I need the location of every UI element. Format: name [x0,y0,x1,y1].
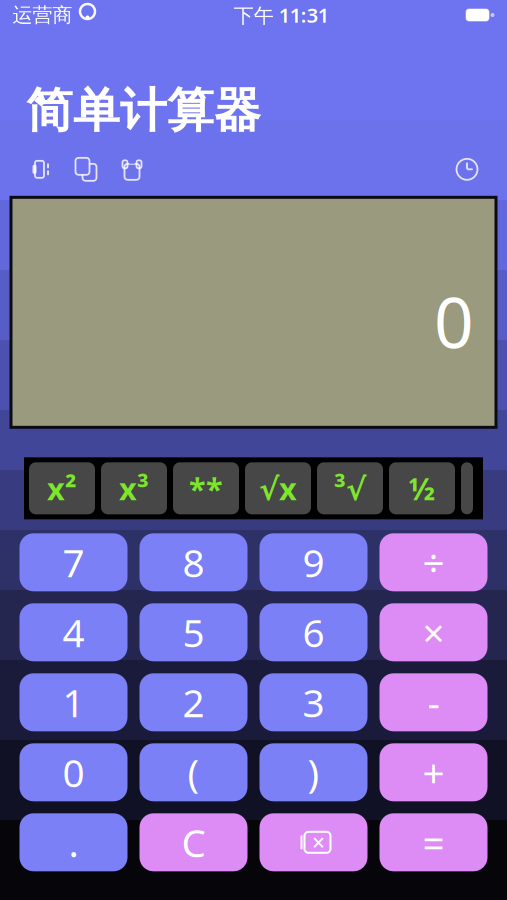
button[interactable]: 7 [19,533,127,591]
button[interactable]: 4 [19,603,127,661]
button[interactable]: = [379,813,487,871]
staticText: 运营商 [12,3,72,27]
staticText: = [422,817,444,868]
staticText: x² [47,468,77,509]
button[interactable]: 0 [19,743,127,801]
button[interactable]: 6 [259,603,367,661]
button[interactable]: × [379,603,487,661]
staticText: × [312,827,325,857]
staticText: ) [307,747,319,798]
button[interactable]: ³√ [317,462,383,514]
button[interactable]: ( [139,743,247,801]
staticText: ** [189,468,223,509]
staticText: 4 [62,607,84,658]
button[interactable]: ) [259,743,367,801]
button[interactable]: ÷ [379,533,487,591]
staticText: 8 [182,537,204,588]
staticText: × [422,607,444,658]
button[interactable]: 1 [19,673,127,731]
staticText: 3 [302,677,324,728]
button[interactable]: Theme [109,149,155,189]
staticText: 5 [182,607,204,658]
staticText: 0 [434,275,474,367]
button[interactable]: Delete [259,813,367,871]
staticText: 0 [62,747,84,798]
button[interactable]: Copy [63,149,109,189]
staticText: 2 [182,677,204,728]
staticText: + [422,747,444,798]
button[interactable]: Sound [17,149,63,189]
button[interactable]: C [139,813,247,871]
button[interactable]: 3 [259,673,367,731]
staticText: ½ [408,468,435,509]
button[interactable]: √x [245,462,311,514]
button[interactable]: 5 [139,603,247,661]
staticText: x³ [119,468,149,509]
staticText: 6 [302,607,324,658]
staticText: C [181,817,205,868]
button[interactable]: - [379,673,487,731]
staticText: ÷ [422,537,444,588]
staticText: 下午 11:31 [234,2,329,28]
button[interactable]: History [444,149,490,189]
staticText: 7 [62,537,84,588]
staticText: 1 [62,677,84,728]
button[interactable]: x² [29,462,95,514]
staticText: 简单计算器 [26,82,261,139]
button[interactable]: ** [173,462,239,514]
staticText: ( [187,747,199,798]
button[interactable]: . [19,813,127,871]
button[interactable]: 2 [139,673,247,731]
staticText: ³√ [334,468,366,509]
staticText: √x [259,468,297,509]
button[interactable]: 9 [259,533,367,591]
button[interactable]: ½ [389,462,455,514]
staticText: . [68,817,78,868]
staticText: 9 [302,537,324,588]
staticText: - [427,677,439,728]
button[interactable]: 8 [139,533,247,591]
button[interactable]: x³ [101,462,167,514]
button[interactable]: + [379,743,487,801]
